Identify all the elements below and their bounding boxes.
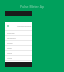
staticText: Pulse <box>7 42 13 45</box>
staticText: Measurement <box>17 25 32 28</box>
staticText: Pulse Meter Ap <box>0 4 64 9</box>
staticText: Note <box>7 57 13 60</box>
staticText: Time <box>7 52 13 55</box>
button[interactable]: Systolic <box>5 31 32 36</box>
staticText: Date <box>7 47 12 50</box>
button[interactable]: Pulse <box>5 41 32 46</box>
button[interactable]: Date <box>5 46 32 51</box>
button[interactable]: Add measurement <box>5 22 32 30</box>
staticText: Systolic <box>7 32 15 35</box>
button[interactable]: Time <box>5 51 32 56</box>
button[interactable]: Diastolic <box>5 36 32 41</box>
button[interactable]: Note <box>5 56 32 61</box>
staticText: Diastolic <box>7 37 16 40</box>
